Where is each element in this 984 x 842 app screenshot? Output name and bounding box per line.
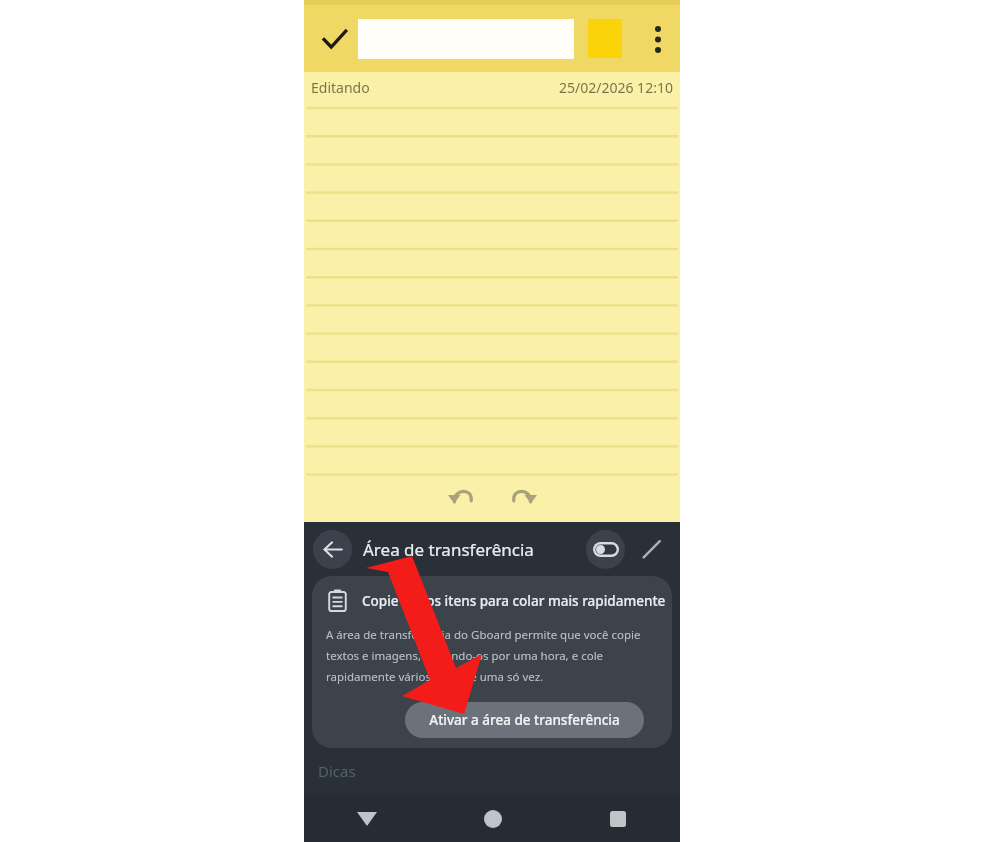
- button[interactable]: Início: [430, 795, 555, 842]
- button[interactable]: Ativar a área de transferência: [405, 702, 644, 738]
- staticText: Editando: [311, 78, 370, 97]
- button[interactable]: Voltar: [304, 795, 430, 842]
- staticText: Ativar a área de transferência: [429, 711, 620, 729]
- staticText: Área de transferência: [363, 538, 534, 561]
- button[interactable]: Mais opções: [636, 17, 680, 61]
- button[interactable]: Salvar: [312, 17, 356, 61]
- button[interactable]: Editar: [631, 529, 671, 569]
- staticText: Dicas: [318, 761, 356, 781]
- button[interactable]: Ativar área de transferência: [586, 530, 625, 569]
- button[interactable]: Voltar: [313, 530, 352, 569]
- staticText: Copie vários itens para colar mais rapid…: [362, 592, 666, 610]
- staticText: A área de transferência do Gboard permit…: [326, 627, 641, 685]
- button[interactable]: Refazer: [500, 472, 546, 518]
- staticText: 25/02/2026 12:10: [559, 78, 673, 97]
- button[interactable]: Recentes: [555, 795, 680, 842]
- button[interactable]: Desfazer: [438, 472, 484, 518]
